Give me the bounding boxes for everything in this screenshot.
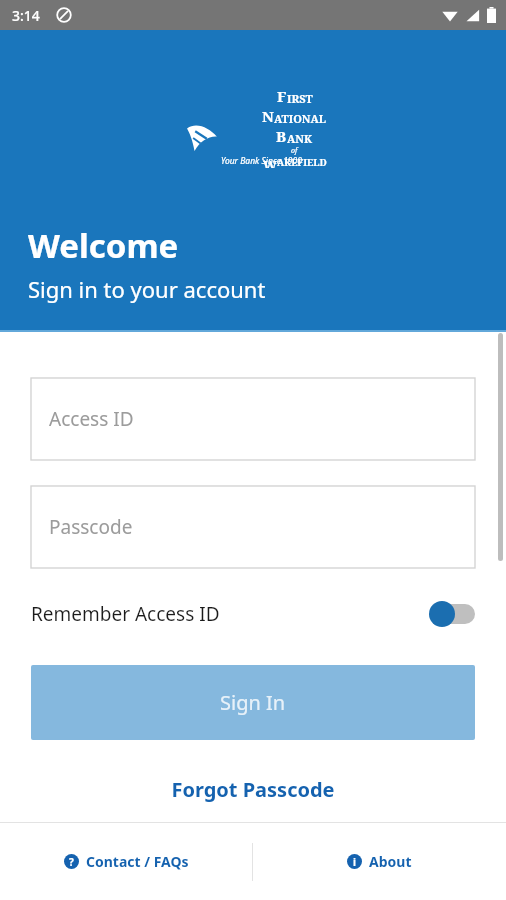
staticText: N (262, 106, 274, 126)
button[interactable]: Sign In (31, 665, 475, 740)
staticText: Sign in to your account (28, 274, 266, 304)
button[interactable]: Remember Access ID (31, 593, 475, 635)
staticText: Contact / FAQs (86, 852, 189, 871)
staticText: of (291, 146, 298, 156)
staticText: AKEFIELD (277, 156, 327, 168)
staticText: Sign In (220, 689, 286, 716)
staticText: B (276, 126, 287, 146)
staticText: Access ID (49, 406, 134, 432)
staticText: ATIONAL (274, 111, 327, 126)
staticText: Welcome (28, 223, 179, 268)
staticText: Forgot Passcode (171, 776, 335, 803)
other: Information (347, 854, 362, 869)
staticText: IRST (287, 91, 313, 106)
staticText: F (277, 86, 287, 106)
staticText: ANK (287, 131, 313, 146)
staticText: Your Bank Since 1900 (221, 155, 302, 167)
staticText: Passcode (49, 514, 133, 540)
button[interactable]: Passcode (31, 486, 475, 568)
staticText: Remember Access ID (31, 601, 220, 627)
staticText: 3:14 (12, 6, 40, 25)
button[interactable]: Forgot Passcode (155, 772, 351, 807)
staticText: W (263, 156, 277, 168)
other: Help (64, 854, 79, 869)
staticText: ? (69, 855, 74, 869)
staticText: About (369, 852, 412, 871)
staticText: i (353, 855, 356, 869)
button[interactable]: Information (337, 842, 422, 881)
button[interactable]: Access ID (31, 378, 475, 460)
button[interactable]: Help (54, 842, 199, 881)
